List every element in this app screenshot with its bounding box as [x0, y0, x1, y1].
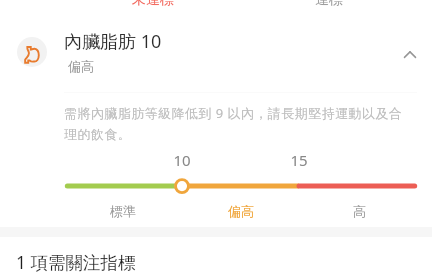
button[interactable]: Collapse	[392, 37, 428, 73]
staticText: 未達標	[132, 0, 174, 9]
button[interactable]: 達標	[275, 0, 383, 9]
staticText: 標準	[110, 203, 136, 219]
staticText: 10	[173, 150, 191, 170]
staticText: 1 項需關注指標	[16, 250, 136, 274]
staticText: 達標	[315, 0, 343, 9]
staticText: 內臟脂肪 10	[64, 29, 162, 54]
staticText: 高	[353, 203, 366, 219]
staticText: 15	[290, 150, 308, 170]
staticText: 需將內臟脂肪等級降低到 9 以內，請長期堅持運動以及合理的飲食。	[64, 104, 408, 143]
button[interactable]: 內臟脂肪 10	[0, 22, 432, 82]
staticText: 偏高	[68, 58, 94, 74]
staticText: 偏高	[228, 203, 254, 219]
button[interactable]: 未達標	[99, 0, 207, 9]
